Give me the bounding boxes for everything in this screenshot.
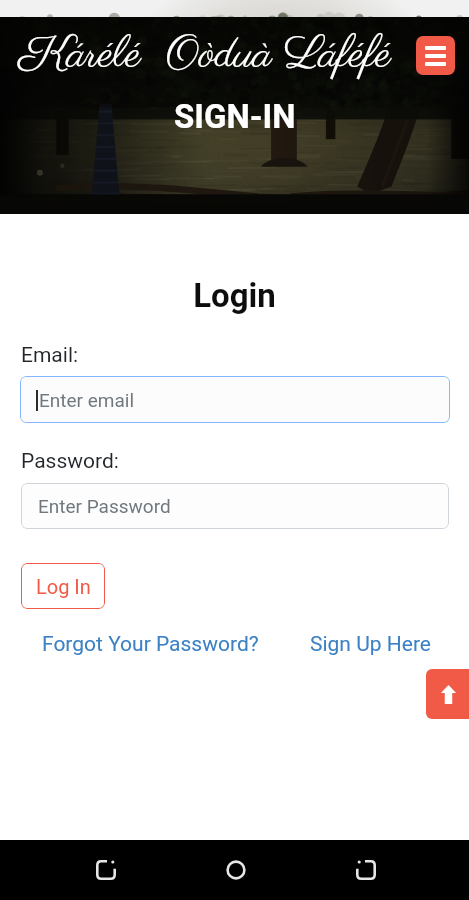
staticText: Email:: [21, 343, 79, 368]
button[interactable]: Forgot Your Password?: [42, 632, 259, 657]
button[interactable]: Recents: [346, 850, 386, 890]
staticText: Kárélé Oòduà Láféfé: [19, 27, 392, 86]
button[interactable]: Menu: [416, 36, 455, 75]
button[interactable]: Enter email: [20, 376, 450, 423]
button[interactable]: Scroll to top: [426, 669, 469, 719]
staticText: Enter Password: [38, 495, 171, 517]
staticText: Login: [0, 276, 469, 315]
staticText: Enter email: [39, 389, 135, 411]
staticText: Log In: [36, 575, 91, 598]
staticText: SIGN-IN: [174, 97, 296, 136]
staticText: Password:: [21, 449, 119, 474]
button[interactable]: Sign Up Here: [310, 632, 431, 657]
button[interactable]: Log In: [21, 563, 105, 609]
button[interactable]: Home: [216, 850, 256, 890]
button[interactable]: Back: [86, 850, 126, 890]
button[interactable]: Enter Password: [21, 483, 449, 529]
